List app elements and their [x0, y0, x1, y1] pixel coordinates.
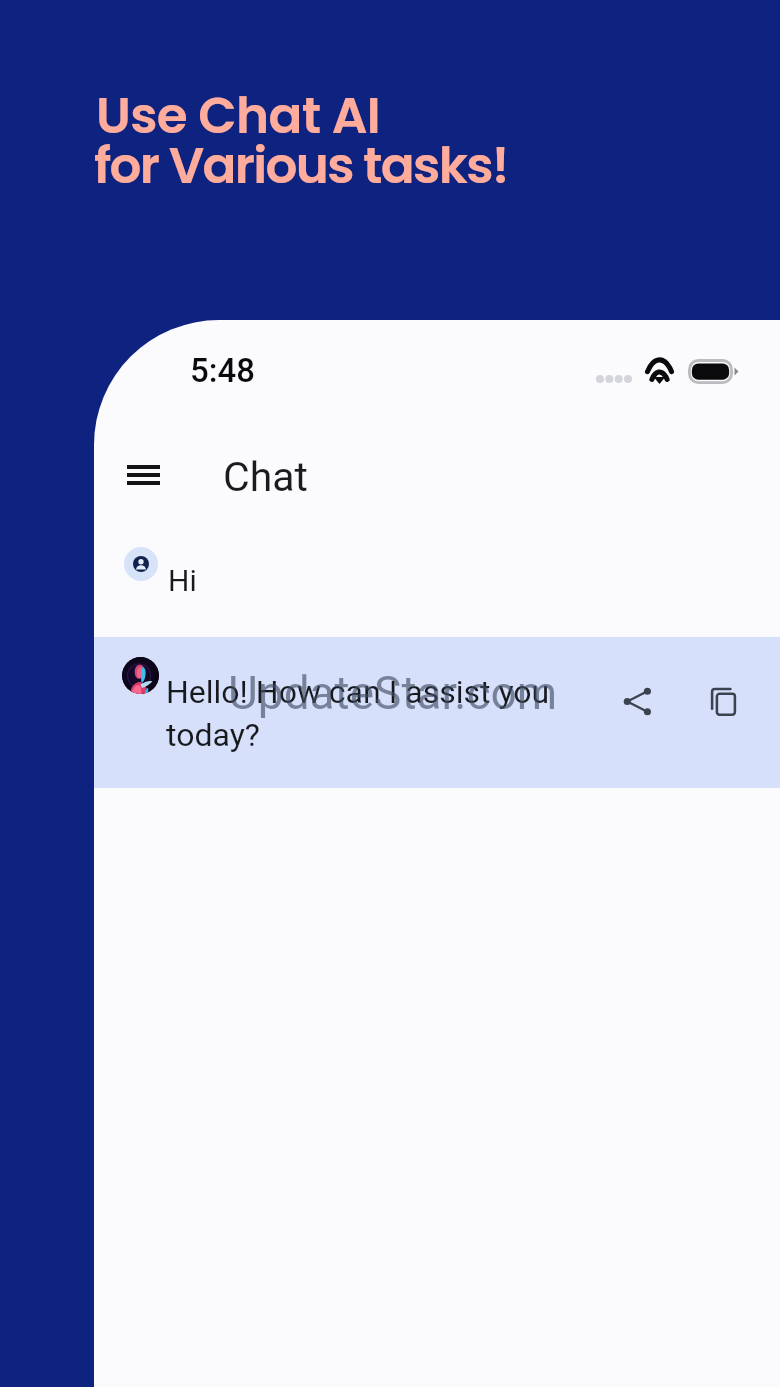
button[interactable]: Hello! How can I assist you today? [94, 637, 780, 788]
staticText: Hello! How can I assist you today? [166, 673, 566, 754]
staticText: UpdateStar.com [228, 666, 558, 720]
button[interactable]: Hi [94, 517, 780, 637]
staticText: for Various tasks! [94, 131, 508, 201]
staticText: Chat [223, 453, 308, 501]
button[interactable]: Share [609, 673, 665, 729]
staticText: 5:48 [190, 351, 256, 390]
staticText: Use Chat AI [96, 81, 381, 151]
staticText: Hi [168, 563, 197, 598]
button[interactable]: Menu [109, 447, 178, 503]
button[interactable]: Copy [694, 673, 750, 729]
